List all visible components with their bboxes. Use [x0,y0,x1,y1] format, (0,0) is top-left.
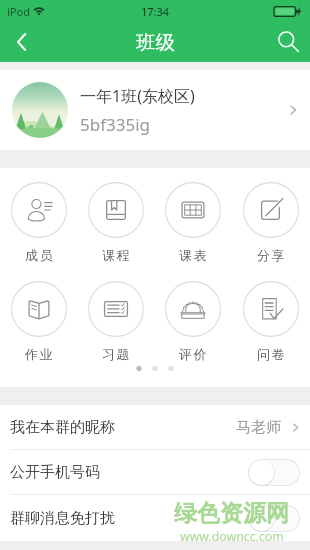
staticText: 5bf335ig [80,113,151,136]
button[interactable]: Back [0,22,44,62]
button[interactable]: 课表 [154,182,232,263]
staticText: 作业 [25,346,55,362]
button[interactable]: Toggle [248,505,300,532]
button[interactable]: 我在本群的昵称 [0,405,310,449]
staticText: 问卷 [257,346,287,362]
button[interactable]: 一年1班(东校区) [0,70,310,150]
staticText: www.downcc.com [180,528,284,545]
staticText: 评价 [179,346,209,362]
staticText: 成员 [25,247,55,263]
staticText: 分享 [257,247,287,263]
button[interactable]: 作业 [0,281,77,362]
button[interactable]: Toggle [248,459,300,486]
button[interactable]: 习题 [77,281,154,362]
staticText: 习题 [102,346,132,362]
staticText: 班级 [136,30,175,55]
button[interactable]: 评价 [154,281,232,362]
staticText: 我在本群的昵称 [10,418,115,437]
staticText: 公开手机号码 [10,463,100,482]
staticText: 一年1班(东校区) [80,85,195,107]
button[interactable]: 课程 [77,182,154,263]
staticText: 马老师 [236,418,281,437]
staticText: 绿色资源网 [174,499,289,528]
button[interactable]: 成员 [0,182,77,263]
staticText: iPod [7,4,30,19]
button[interactable]: Search [266,22,310,62]
staticText: 群聊消息免打扰 [10,509,115,528]
button[interactable]: 分享 [232,182,310,263]
staticText: 17:34 [141,4,170,19]
button[interactable]: 问卷 [232,281,310,362]
staticText: 课表 [179,247,209,263]
staticText: 课程 [102,247,132,263]
